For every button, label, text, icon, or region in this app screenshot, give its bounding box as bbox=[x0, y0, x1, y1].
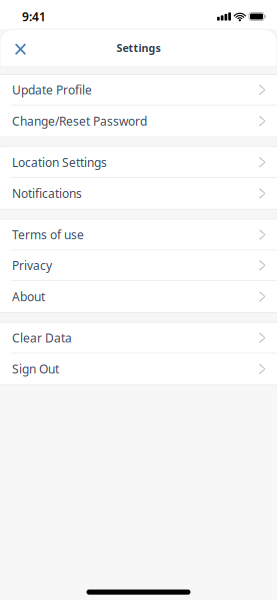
staticText: Update Profile bbox=[12, 82, 92, 98]
staticText: Notifications bbox=[12, 185, 82, 201]
staticText: Location Settings bbox=[12, 154, 107, 170]
staticText: Sign Out bbox=[12, 361, 59, 377]
button[interactable]: Terms of use bbox=[0, 220, 277, 250]
staticText: Settings bbox=[116, 41, 160, 55]
button[interactable]: Clear Data bbox=[0, 323, 277, 354]
button[interactable]: Update Profile bbox=[0, 75, 277, 106]
button[interactable]: Close bbox=[4, 33, 34, 63]
button[interactable]: Privacy bbox=[0, 250, 277, 281]
staticText: Privacy bbox=[12, 257, 52, 273]
button[interactable]: Notifications bbox=[0, 178, 277, 209]
staticText: Clear Data bbox=[12, 330, 72, 346]
staticText: 9:41 bbox=[22, 8, 46, 24]
staticText: About bbox=[12, 289, 45, 304]
staticText: Change/Reset Password bbox=[12, 113, 147, 129]
button[interactable]: Sign Out bbox=[0, 354, 277, 384]
staticText: Terms of use bbox=[12, 227, 84, 243]
button[interactable]: Change/Reset Password bbox=[0, 106, 277, 136]
button[interactable]: About bbox=[0, 281, 277, 312]
button[interactable]: Location Settings bbox=[0, 147, 277, 178]
